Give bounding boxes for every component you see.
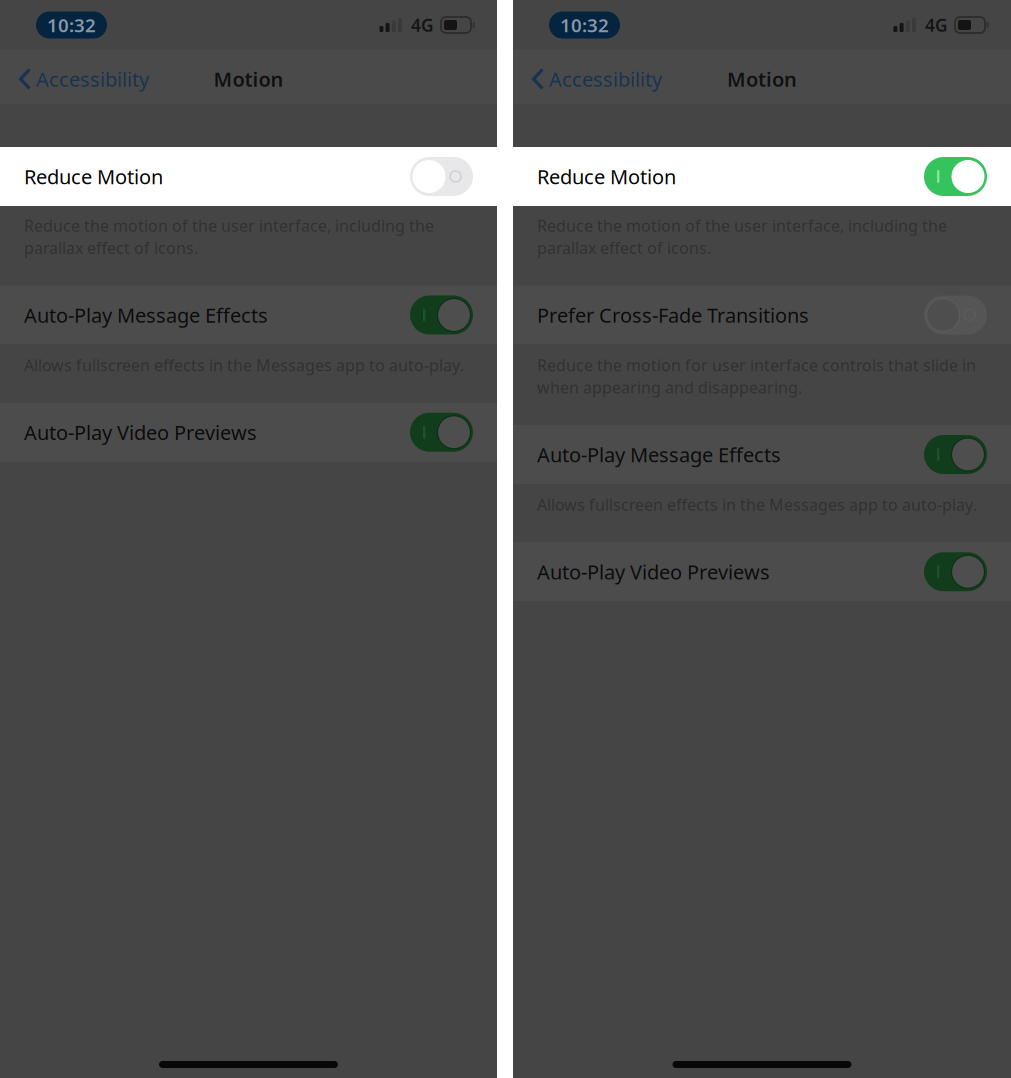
staticText: Reduce the motion of the user interface,… [537,215,947,258]
button[interactable]: Auto-Play Video Previews [513,542,1011,601]
staticText: Accessibility [36,66,149,92]
staticText: 4G [925,13,948,36]
staticText: Prefer Cross-Fade Transitions [537,302,809,328]
staticText: Reduce the motion of the user interface,… [24,215,434,258]
button[interactable]: Auto-Play Message Effects [0,285,497,344]
button[interactable]: Prefer Cross-Fade Transitions [513,285,1011,344]
staticText: Auto-Play Message Effects [24,302,268,328]
staticText: Auto-Play Video Previews [24,419,257,446]
staticText: 10:32 [560,13,609,37]
staticText: Motion [727,66,797,92]
button[interactable]: Reduce Motion [0,147,497,206]
staticText: Allows fullscreen effects in the Message… [537,494,977,515]
staticText: Auto-Play Message Effects [537,441,781,468]
staticText: 10:32 [47,13,96,37]
staticText: Accessibility [549,66,662,92]
staticText: Allows fullscreen effects in the Message… [24,354,464,376]
button[interactable]: Accessibility [513,53,672,101]
staticText: Motion [213,66,283,92]
staticText: 4G [411,13,434,36]
button[interactable]: Auto-Play Message Effects [513,425,1011,484]
staticText: Auto-Play Video Previews [537,558,770,585]
staticText: Reduce Motion [537,163,676,190]
button[interactable]: Reduce Motion [513,147,1011,206]
button[interactable]: Auto-Play Video Previews [0,403,497,462]
staticText: Reduce Motion [24,163,163,190]
staticText: Reduce the motion for user interface con… [537,354,976,398]
button[interactable]: Accessibility [0,53,159,101]
